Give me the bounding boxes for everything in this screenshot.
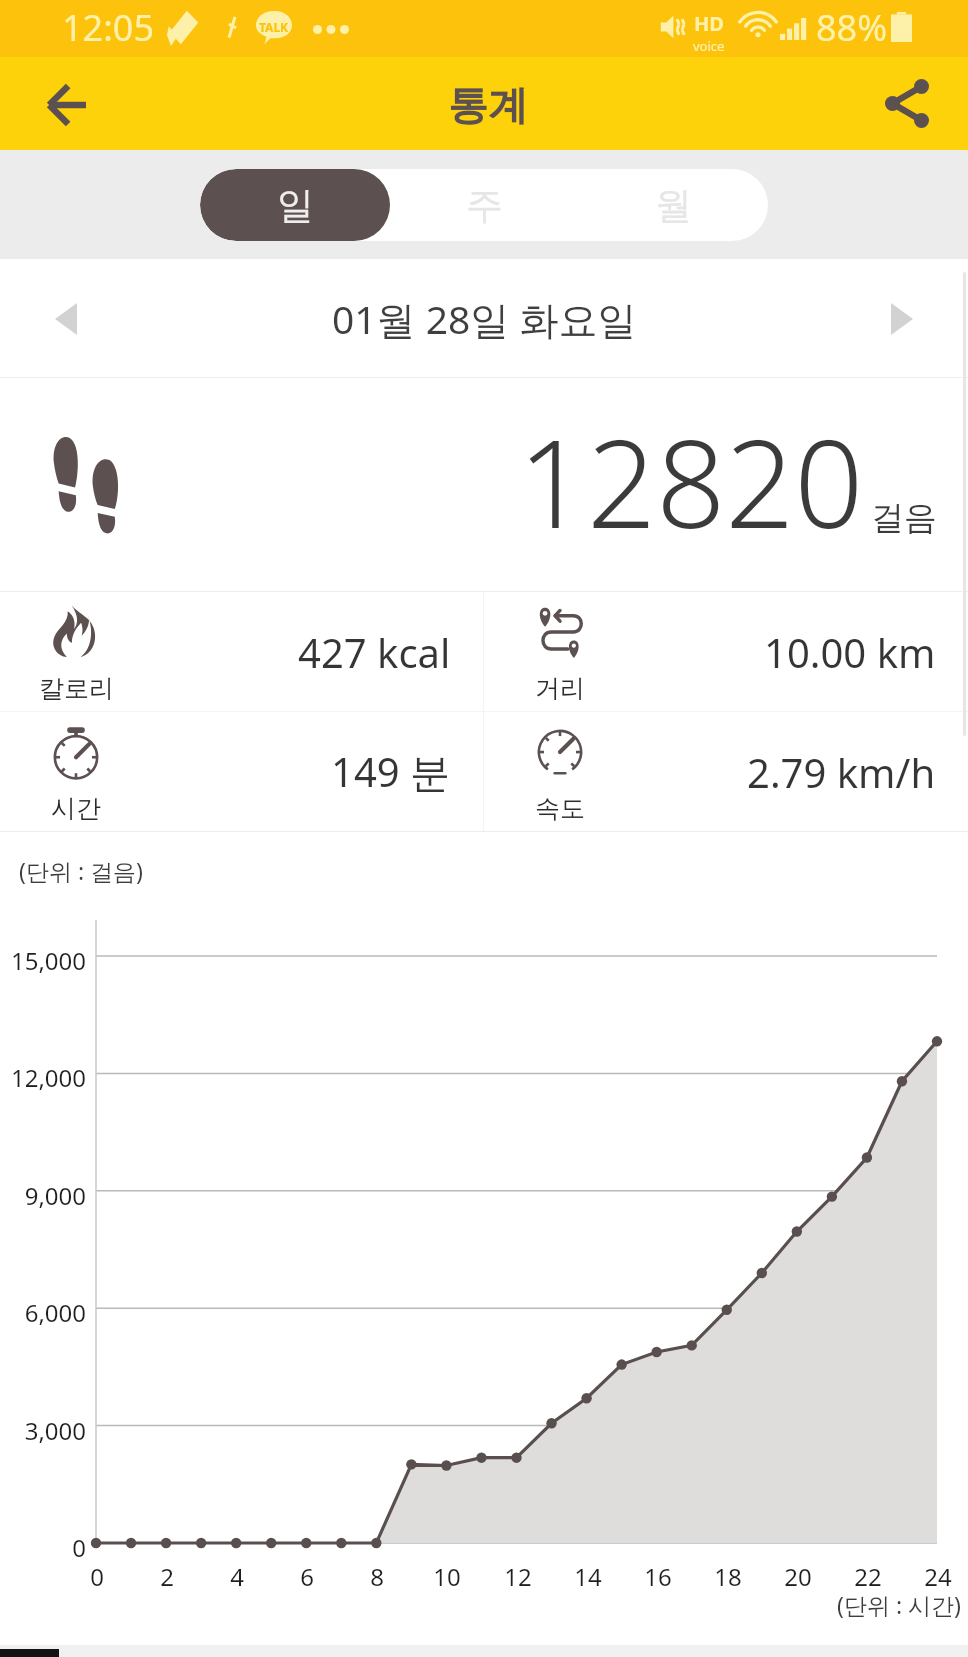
button[interactable]: 칼로리 — [0, 592, 483, 711]
staticText: 10.00 km — [764, 625, 936, 679]
button[interactable]: Share — [864, 60, 950, 146]
staticText: 12:05 — [62, 3, 155, 52]
staticText: 4 — [207, 1560, 267, 1593]
staticText: (단위 : 시간) — [837, 1589, 961, 1620]
staticText: 속도 — [535, 793, 585, 824]
staticText: (단위 : 걸음) — [19, 855, 143, 886]
staticText: 22 — [838, 1560, 898, 1593]
staticText: 18 — [698, 1560, 758, 1593]
button[interactable]: 거리 — [484, 592, 968, 711]
staticText: 3,000 — [1, 1414, 86, 1447]
staticText: 주 — [466, 182, 503, 229]
staticText: 12 — [488, 1560, 548, 1593]
staticText: 2.79 km/h — [747, 745, 936, 799]
staticText: 149 분 — [331, 744, 451, 799]
button[interactable]: 일 — [200, 169, 390, 241]
staticText: 88% — [816, 3, 888, 52]
staticText: HD — [694, 10, 724, 37]
staticText: 01월 28일 화요일 — [332, 292, 637, 345]
staticText: 9,000 — [1, 1179, 86, 1212]
staticText: 20 — [768, 1560, 828, 1593]
staticText: 6,000 — [1, 1296, 86, 1329]
staticText: TALK — [259, 19, 289, 35]
staticText: 일 — [277, 182, 314, 229]
staticText: 걸음 — [871, 497, 937, 539]
staticText: 통계 — [448, 80, 528, 130]
staticText: 6 — [277, 1560, 337, 1593]
button[interactable]: 속도 — [484, 712, 968, 831]
staticText: 15,000 — [1, 944, 86, 977]
button[interactable]: 월 — [579, 169, 768, 241]
staticText: 14 — [558, 1560, 618, 1593]
staticText: 12820 — [518, 399, 864, 564]
staticText: 12,000 — [1, 1061, 86, 1094]
button[interactable]: Next day — [874, 291, 930, 347]
staticText: 8 — [347, 1560, 407, 1593]
button[interactable]: Previous day — [38, 291, 94, 347]
staticText: 0 — [1, 1531, 86, 1564]
staticText: 월 — [655, 182, 692, 229]
staticText: 칼로리 — [39, 673, 114, 704]
staticText: voice — [693, 37, 725, 55]
staticText: 16 — [628, 1560, 688, 1593]
staticText: 0 — [67, 1560, 127, 1593]
button[interactable]: 시간 — [0, 712, 483, 831]
staticText: 2 — [137, 1560, 197, 1593]
staticText: 427 kcal — [298, 625, 451, 679]
staticText: 24 — [908, 1560, 968, 1593]
staticText: 시간 — [51, 793, 101, 824]
button[interactable]: 주 — [390, 169, 579, 241]
staticText: 거리 — [535, 673, 585, 704]
button[interactable]: Back — [24, 62, 110, 148]
staticText: 10 — [417, 1560, 477, 1593]
